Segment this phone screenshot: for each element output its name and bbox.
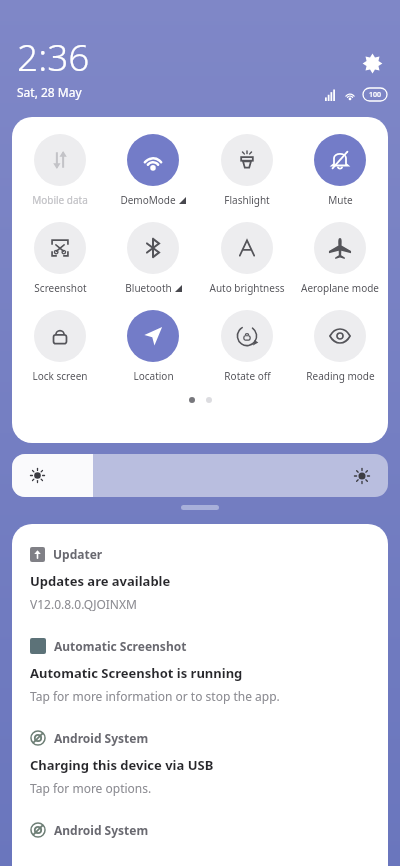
- button[interactable]: Screenshot: [15, 222, 105, 295]
- staticText: Automatic Screenshot: [54, 638, 187, 654]
- staticText: Aeroplane mode: [301, 281, 379, 295]
- staticText: Tap for more options.: [30, 780, 152, 796]
- button[interactable]: DemoMode: [108, 134, 198, 207]
- staticText: Flashlight: [224, 193, 270, 207]
- staticText: Location: [133, 369, 174, 383]
- button[interactable]: Mobile data: [15, 134, 105, 207]
- staticText: 100: [369, 90, 382, 100]
- staticText: Auto brightness: [209, 281, 285, 295]
- button[interactable]: Bluetooth: [108, 222, 198, 295]
- staticText: Updater: [53, 546, 103, 562]
- button[interactable]: Auto brightness: [202, 222, 292, 295]
- button[interactable]: Android System: [30, 730, 372, 796]
- staticText: Screenshot: [34, 281, 87, 295]
- button[interactable]: Aeroplane mode: [295, 222, 385, 295]
- staticText: Charging this device via USB: [30, 756, 214, 774]
- staticText: Android System: [54, 822, 149, 838]
- button[interactable]: Mute: [295, 134, 385, 207]
- staticText: Sat, 28 May: [17, 84, 82, 100]
- button[interactable]: Automatic Screenshot: [30, 638, 372, 704]
- button[interactable]: Brightness: [12, 454, 388, 497]
- button[interactable]: Flashlight: [202, 134, 292, 207]
- staticText: Rotate off: [224, 369, 271, 383]
- staticText: DemoMode: [120, 193, 176, 207]
- button[interactable]: Lock screen: [15, 310, 105, 383]
- staticText: Mute: [328, 193, 353, 207]
- button[interactable]: Reading mode: [295, 310, 385, 383]
- staticText: Updates are available: [30, 572, 171, 590]
- button[interactable]: Settings: [357, 48, 387, 78]
- staticText: 2:36: [17, 31, 90, 81]
- staticText: Bluetooth: [125, 281, 172, 295]
- button[interactable]: Android System: [30, 822, 372, 838]
- staticText: Mobile data: [32, 193, 88, 207]
- staticText: Tap for more information or to stop the …: [30, 688, 280, 704]
- staticText: Android System: [54, 730, 149, 746]
- button[interactable]: Updater: [30, 546, 372, 612]
- staticText: Reading mode: [306, 369, 375, 383]
- staticText: Lock screen: [32, 369, 88, 383]
- staticText: Automatic Screenshot is running: [30, 664, 243, 682]
- staticText: V12.0.8.0.QJOINXM: [30, 596, 137, 612]
- button[interactable]: Location: [108, 310, 198, 383]
- button[interactable]: Rotate off: [202, 310, 292, 383]
